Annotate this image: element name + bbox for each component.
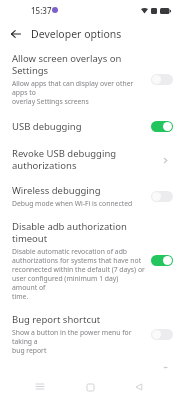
button[interactable]: Recents bbox=[30, 377, 50, 397]
button[interactable]: Open bbox=[157, 152, 173, 168]
button[interactable]: Disable adb authorization timeout bbox=[0, 214, 179, 307]
staticText: Wireless debugging bbox=[12, 184, 101, 197]
staticText: USB debugging bbox=[12, 120, 82, 133]
button[interactable]: Toggle bbox=[151, 329, 173, 340]
button[interactable]: USB debugging bbox=[0, 112, 179, 141]
staticText: Developer options bbox=[31, 27, 122, 41]
button[interactable]: Back bbox=[129, 377, 149, 397]
button[interactable]: Toggle bbox=[151, 121, 173, 132]
button[interactable]: Wireless debugging bbox=[0, 178, 179, 214]
button[interactable]: Toggle bbox=[151, 191, 173, 202]
staticText: Allow apps that can display over other a… bbox=[12, 79, 145, 106]
button[interactable]: Back bbox=[7, 25, 25, 43]
button[interactable]: Home bbox=[80, 377, 100, 397]
staticText: Bug report shortcut bbox=[12, 313, 101, 326]
staticText: Disable automatic revocation of adb auth… bbox=[12, 247, 145, 301]
staticText: Disable adb authorization timeout bbox=[12, 220, 145, 245]
staticText: Show a button in the power menu for taki… bbox=[12, 328, 145, 355]
button[interactable]: Revoke USB debugging authorizations bbox=[0, 141, 179, 178]
staticText: Debug mode when Wi-Fi is connected bbox=[12, 199, 133, 208]
staticText: Allow screen overlays on Settings bbox=[12, 52, 145, 77]
button[interactable]: Bug report shortcut bbox=[0, 307, 179, 361]
button[interactable]: Open bbox=[157, 367, 173, 368]
button[interactable]: Toggle bbox=[151, 74, 173, 85]
staticText: 15:37 bbox=[31, 5, 52, 16]
button[interactable]: Allow screen overlays on Settings bbox=[0, 48, 179, 112]
staticText: Revoke USB debugging authorizations bbox=[12, 147, 151, 172]
button[interactable]: Toggle bbox=[151, 255, 173, 266]
